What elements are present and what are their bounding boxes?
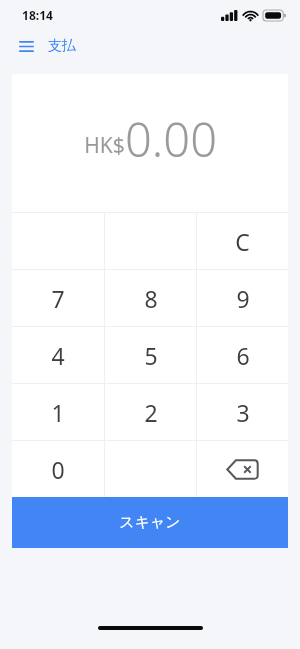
staticText: 6 <box>236 340 250 371</box>
staticText: 8 <box>144 283 158 314</box>
staticText: 0 <box>51 454 65 485</box>
button[interactable]: C <box>197 213 288 269</box>
button[interactable]: 5 <box>105 327 196 383</box>
staticText: 1 <box>51 397 65 428</box>
button[interactable]: 8 <box>105 270 196 326</box>
button[interactable]: スキャン <box>12 497 288 548</box>
staticText: 2 <box>144 397 158 428</box>
staticText: 5 <box>144 340 158 371</box>
staticText: 7 <box>51 283 65 314</box>
staticText: スキャン <box>119 513 181 532</box>
button[interactable]: 7 <box>12 270 104 326</box>
staticText: HK$ <box>84 131 125 160</box>
staticText: 支払 <box>48 37 76 55</box>
staticText: 0.00 <box>125 107 217 171</box>
button[interactable]: 2 <box>105 384 196 440</box>
button[interactable]: 4 <box>12 327 104 383</box>
button[interactable]: 1 <box>12 384 104 440</box>
button[interactable]: Menu <box>14 34 38 58</box>
staticText: 18:14 <box>22 7 53 23</box>
button[interactable]: 6 <box>197 327 288 383</box>
staticText: C <box>235 226 250 257</box>
button[interactable]: Backspace <box>197 441 288 497</box>
button[interactable]: 3 <box>197 384 288 440</box>
staticText: 3 <box>236 397 250 428</box>
button[interactable]: 支払 <box>48 37 76 55</box>
button[interactable]: 9 <box>197 270 288 326</box>
staticText: 4 <box>51 340 65 371</box>
staticText: 9 <box>236 283 250 314</box>
button[interactable]: 0 <box>12 441 104 497</box>
